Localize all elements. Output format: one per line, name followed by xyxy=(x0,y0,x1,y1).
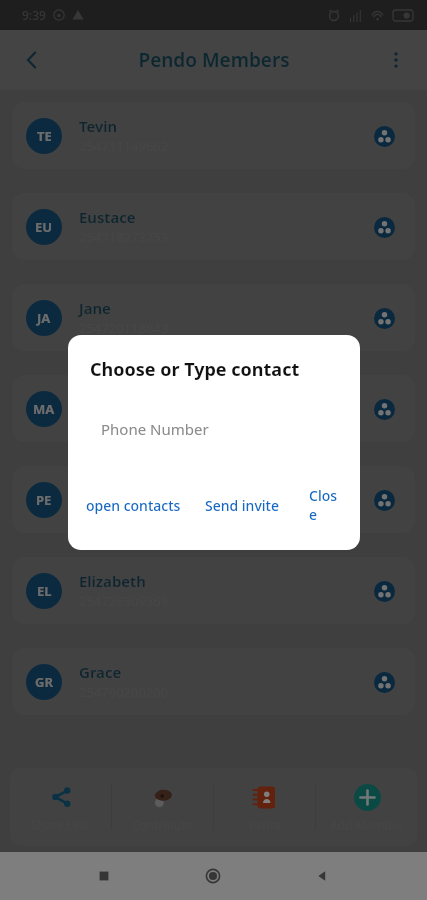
button[interactable]: EU xyxy=(12,193,415,260)
staticText: 254720118843 xyxy=(79,319,169,337)
staticText: Grace xyxy=(79,662,122,682)
button[interactable]: EL xyxy=(12,557,415,624)
button[interactable]: JA xyxy=(12,284,415,351)
staticText: 9:39 xyxy=(22,7,46,23)
button[interactable]: Recent apps xyxy=(81,853,127,899)
button[interactable]: TE xyxy=(12,102,415,169)
staticText: Send invite xyxy=(205,496,279,515)
staticText: Eustace xyxy=(79,207,136,227)
button[interactable]: Share Link xyxy=(10,768,111,846)
staticText: 254733905512 xyxy=(79,410,169,428)
staticText: JA xyxy=(37,309,51,327)
staticText: EU xyxy=(35,218,53,236)
button[interactable]: Back xyxy=(299,853,345,899)
staticText: Elizabeth xyxy=(79,571,146,591)
button[interactable]: Home xyxy=(190,853,236,899)
button[interactable]: PE xyxy=(12,466,415,533)
button[interactable]: Member group xyxy=(367,119,401,153)
staticText: TE xyxy=(37,127,52,145)
button[interactable]: Add Member xyxy=(316,768,417,846)
button[interactable]: Send invite xyxy=(201,492,283,519)
button[interactable]: Back xyxy=(10,38,54,82)
staticText: open contacts xyxy=(86,496,181,515)
button[interactable]: Member group xyxy=(367,210,401,244)
staticText: Jane xyxy=(79,298,111,318)
button[interactable]: MA xyxy=(12,375,415,442)
button[interactable]: Phone Number xyxy=(101,419,209,439)
button[interactable]: Contribute xyxy=(112,768,213,846)
button[interactable]: Member group xyxy=(367,665,401,699)
staticText: 254701338270 xyxy=(79,501,169,519)
staticText: Pendo Members xyxy=(138,47,290,73)
staticText: MA xyxy=(33,400,55,418)
staticText: Tevin xyxy=(79,116,117,136)
button[interactable]: open contacts xyxy=(82,492,185,519)
button[interactable]: Member group xyxy=(367,574,401,608)
button[interactable]: Member group xyxy=(367,483,401,517)
button[interactable]: Close xyxy=(305,482,342,528)
staticText: EL xyxy=(37,582,52,600)
staticText: GR xyxy=(35,673,53,691)
button[interactable]: Member group xyxy=(367,301,401,335)
staticText: Choose or Type contact xyxy=(90,357,300,382)
staticText: PE xyxy=(36,491,52,509)
staticText: Close xyxy=(309,486,338,524)
button[interactable]: Member group xyxy=(367,392,401,426)
button[interactable]: GR xyxy=(12,648,415,715)
button[interactable]: Invite xyxy=(214,768,315,846)
button[interactable]: More options xyxy=(375,39,417,81)
